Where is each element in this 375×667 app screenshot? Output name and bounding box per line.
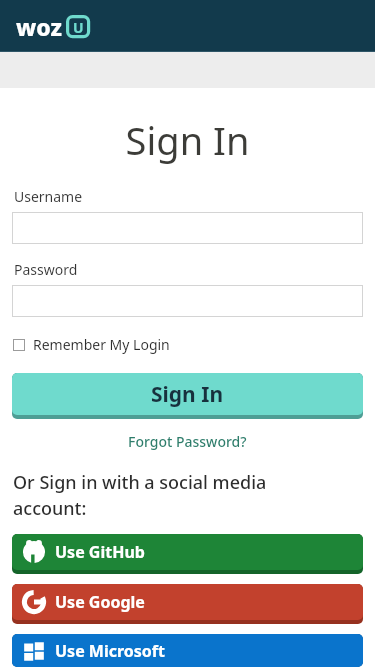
staticText: Sign In <box>0 114 375 166</box>
button[interactable]: Use Microsoft <box>12 634 363 667</box>
staticText: Use Microsoft <box>55 640 165 662</box>
staticText: Use GitHub <box>55 541 145 563</box>
button[interactable]: Use Google <box>12 584 363 624</box>
staticText: U <box>73 18 84 37</box>
button[interactable]: Password <box>12 285 363 317</box>
staticText: Use Google <box>55 591 145 613</box>
button[interactable]: Username <box>12 212 363 244</box>
staticText: Or Sign in with a social media account: <box>13 470 320 520</box>
staticText: woz <box>16 11 63 42</box>
staticText: Forgot Password? <box>128 432 247 451</box>
staticText: Sign In <box>151 380 224 409</box>
staticText: Password <box>14 260 78 279</box>
button[interactable]: Woz U home <box>16 11 91 42</box>
staticText: Username <box>14 187 83 206</box>
button[interactable]: Sign In <box>12 373 363 419</box>
button[interactable]: Remember My Login <box>13 335 170 354</box>
button[interactable]: Use GitHub <box>12 534 363 574</box>
staticText: Remember My Login <box>33 335 170 354</box>
button[interactable]: Forgot Password? <box>0 432 375 451</box>
